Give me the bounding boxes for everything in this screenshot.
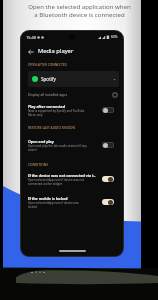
staticText: RESTORE LAST AUDIO SESSION bbox=[28, 126, 75, 130]
staticText: CONDITIONS bbox=[28, 163, 49, 167]
staticText: Open and play bbox=[28, 139, 54, 144]
staticText: 15:48 bbox=[26, 35, 36, 40]
staticText: a Bluetooth device is connected bbox=[34, 10, 125, 18]
button[interactable]: If the mobile is locked bbox=[28, 196, 114, 209]
button[interactable]: Play after connected bbox=[28, 104, 114, 117]
staticText: Music only bbox=[28, 113, 43, 117]
staticText: connected via the widget bbox=[28, 182, 62, 186]
staticText: 60% bbox=[111, 35, 118, 39]
button[interactable]: If the device was not connected via t.. bbox=[28, 173, 114, 186]
staticText: Open the selected application when bbox=[28, 2, 131, 10]
staticText: exists) bbox=[28, 148, 37, 152]
staticText: If the device was not connected via t.. bbox=[28, 173, 96, 178]
staticText: Open and play the last audio session (if… bbox=[28, 144, 87, 148]
staticText: Open selected App even if device was not bbox=[28, 178, 84, 182]
staticText: locked bbox=[28, 205, 37, 209]
staticText: Display all installed apps bbox=[28, 92, 68, 97]
button[interactable]: Back bbox=[26, 47, 35, 56]
staticText: Now is supported by Spotify and YouTube bbox=[28, 109, 85, 113]
staticText: Media player bbox=[38, 47, 74, 55]
button[interactable]: Open and play bbox=[28, 139, 114, 152]
button[interactable]: Spotify bbox=[28, 71, 119, 87]
staticText: If the mobile is locked bbox=[28, 196, 68, 201]
staticText: OPEN AFTER CONNECTED bbox=[28, 63, 67, 67]
staticText: Open selected App even if device was bbox=[28, 201, 79, 205]
staticText: Play after connected bbox=[28, 104, 65, 109]
button[interactable]: Display all installed apps bbox=[28, 90, 117, 99]
staticText: Spotify bbox=[41, 76, 56, 82]
